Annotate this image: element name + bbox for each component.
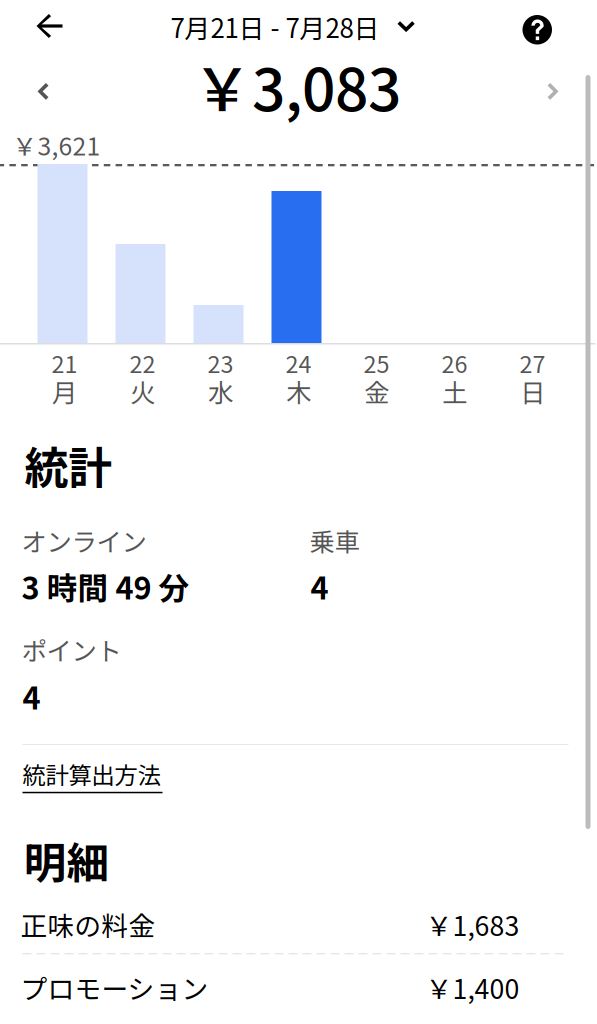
staticText: 26 (441, 346, 467, 380)
staticText: 7月21日 - 7月28日 (170, 8, 379, 45)
staticText: 25 (363, 346, 389, 380)
staticText: ￥1,400 (425, 968, 519, 1007)
button[interactable]: 統計算出方法 (22, 757, 162, 793)
staticText: 火 (130, 373, 155, 409)
staticText: ポイント (21, 631, 121, 668)
staticText: ￥1,683 (425, 905, 519, 944)
staticText: 乗車 (309, 522, 359, 559)
staticText: 4 (310, 564, 328, 608)
staticText: 4 (22, 674, 40, 718)
staticText: 21 (51, 346, 77, 380)
staticText: 正味の料金 (20, 905, 155, 944)
button[interactable]: Previous week (28, 74, 57, 109)
staticText: プロモーション (20, 968, 208, 1007)
staticText: 明細 (23, 829, 109, 891)
staticText: 土 (442, 373, 467, 409)
staticText: 金 (364, 373, 389, 409)
staticText: ￥3,621 (12, 127, 100, 163)
staticText: 統計 (24, 433, 112, 497)
button[interactable]: Next week (538, 74, 567, 109)
staticText: 27 (519, 346, 545, 380)
button[interactable]: 7月21日 - 7月28日 (164, 2, 421, 51)
staticText: 統計算出方法 (22, 757, 160, 791)
button[interactable]: Help (522, 15, 552, 44)
staticText: 水 (208, 373, 233, 409)
staticText: 23 (207, 346, 233, 380)
staticText: オンライン (21, 522, 146, 559)
staticText: ￥3,083 (193, 43, 401, 128)
staticText: 木 (286, 373, 311, 409)
staticText: 22 (129, 346, 155, 380)
staticText: 3 時間 49 分 (21, 564, 189, 608)
staticText: 24 (285, 346, 311, 380)
button[interactable]: Back (30, 8, 68, 44)
staticText: 日 (520, 373, 545, 409)
staticText: 月 (52, 373, 77, 409)
